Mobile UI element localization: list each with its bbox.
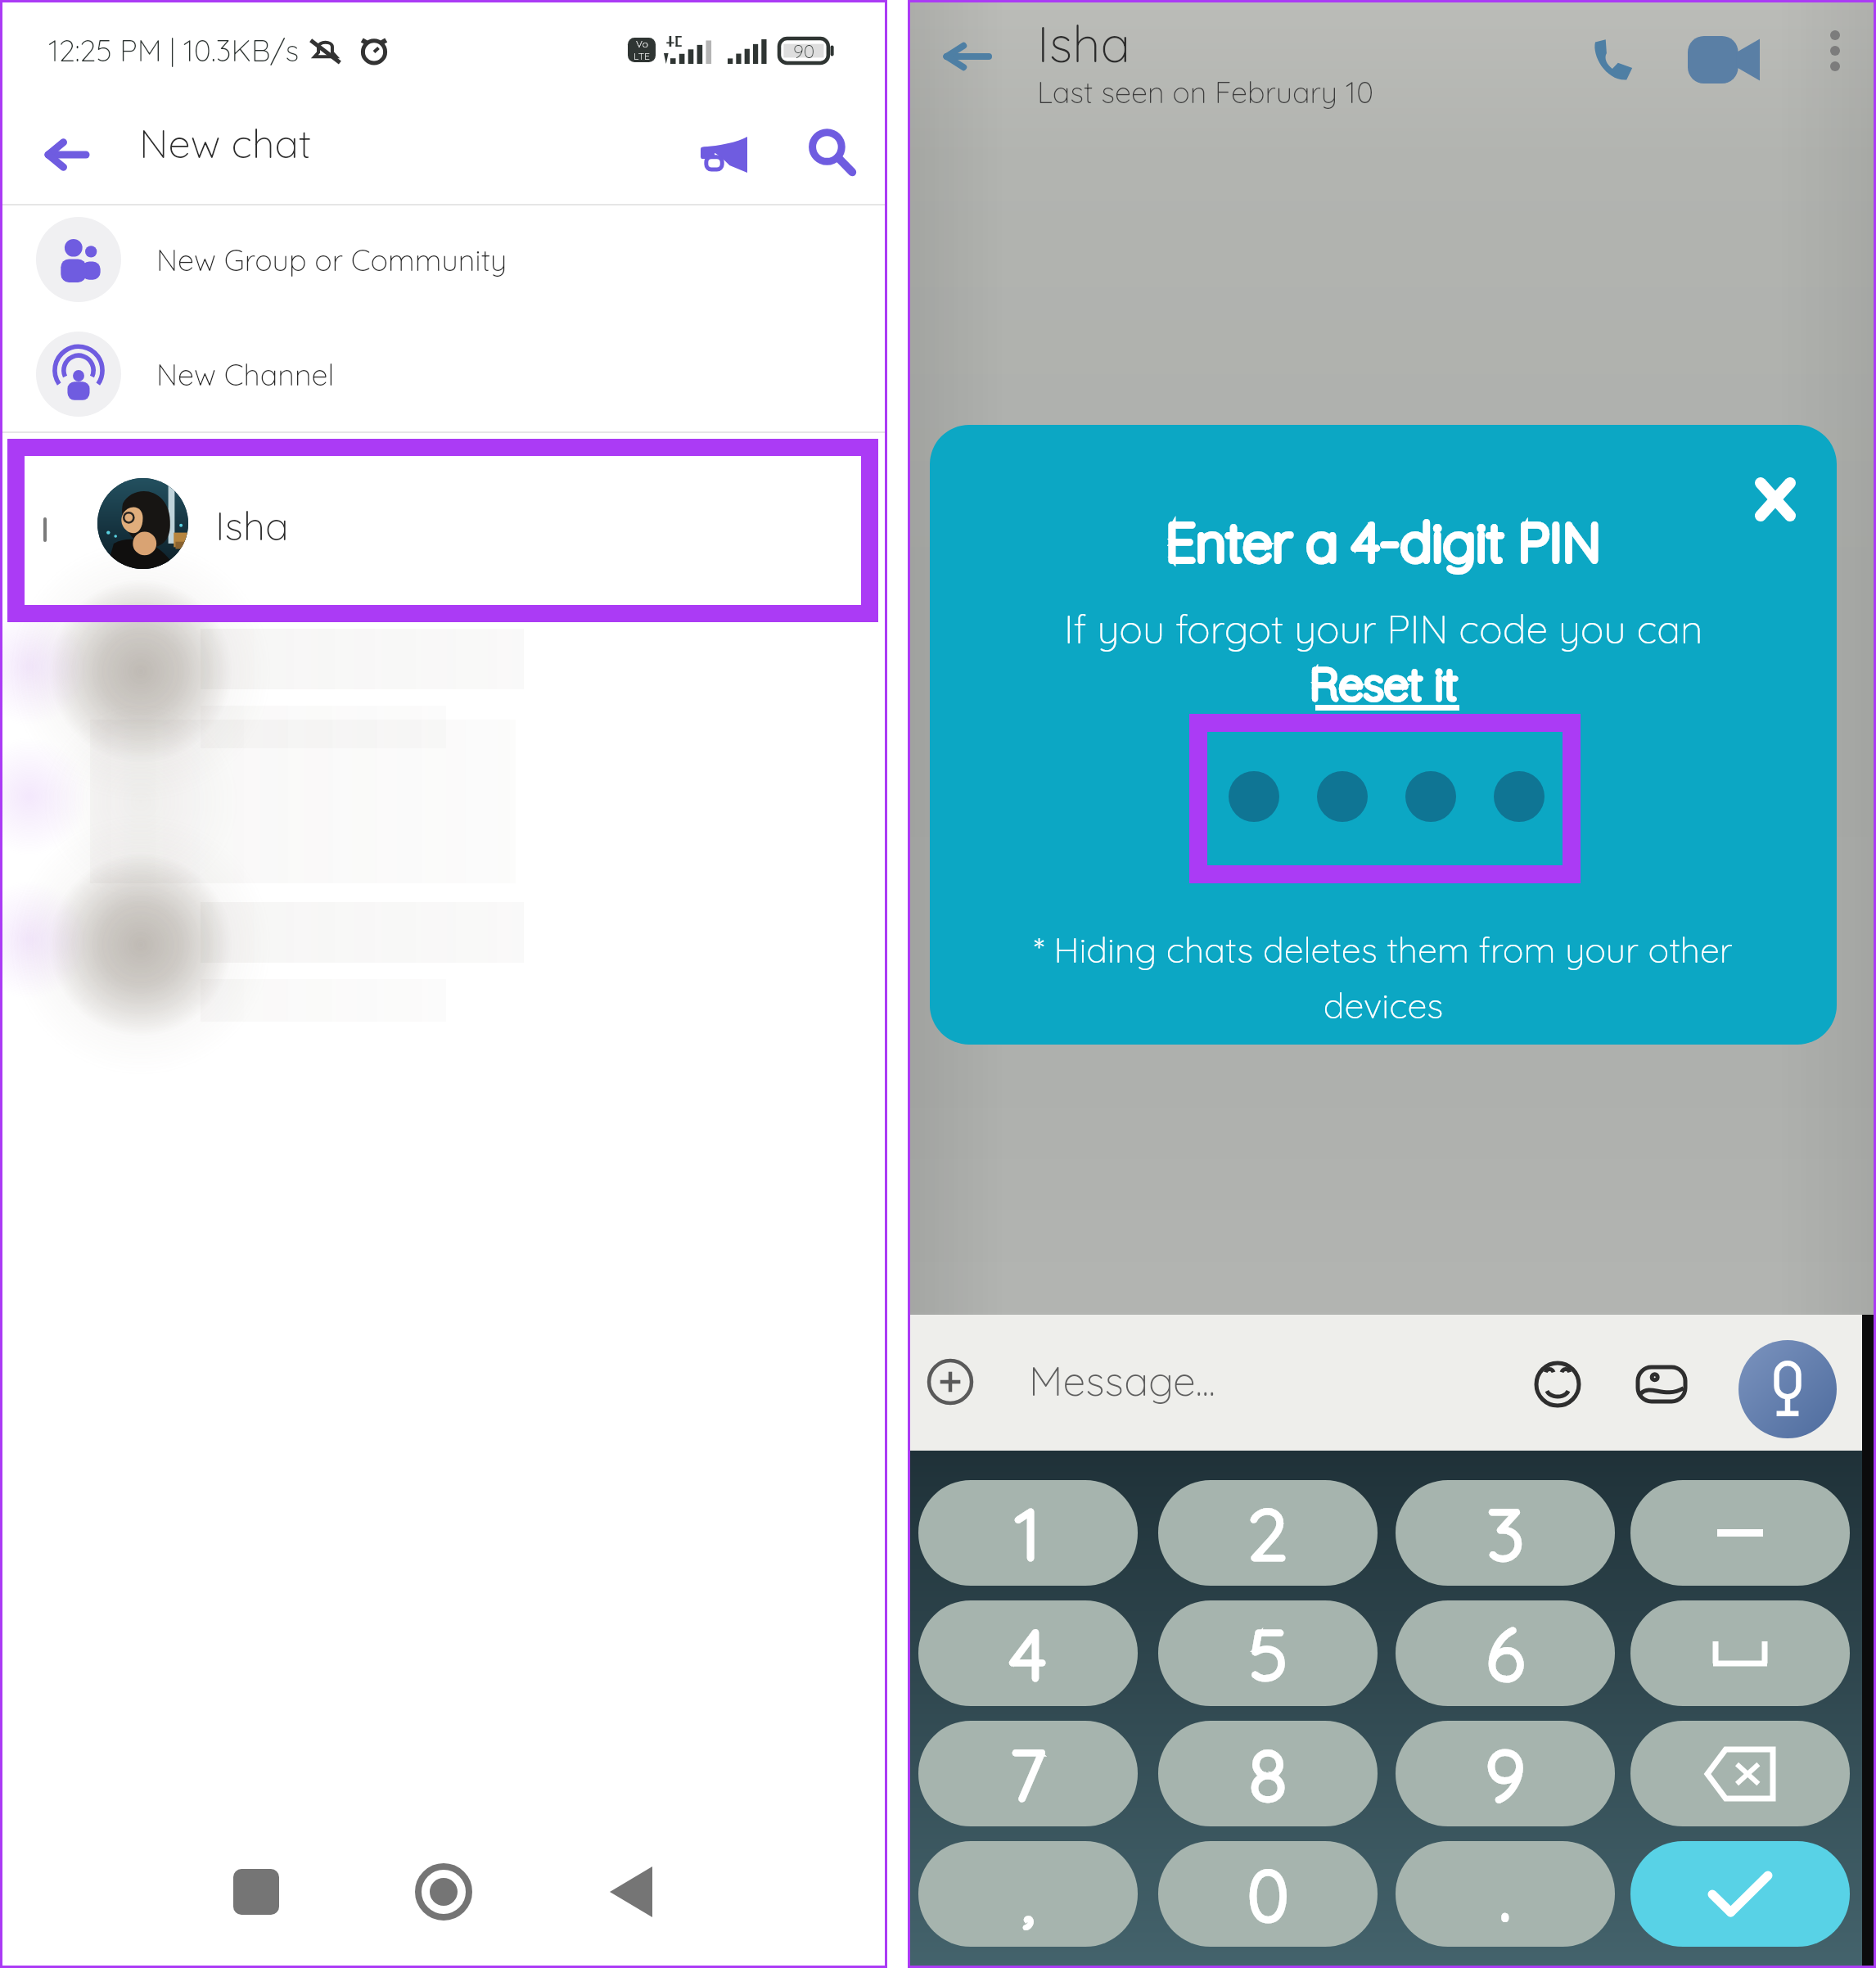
button[interactable]: Call [1581,28,1646,93]
button[interactable]: Video call [1685,21,1762,98]
staticText: 8 [1249,1730,1287,1818]
staticText: 8 [1249,1730,1287,1818]
button[interactable]: 5 [1158,1600,1378,1706]
staticText: Enter a 4-digit PIN [1166,508,1601,575]
staticText: 9 [1486,1730,1525,1818]
staticText: 3 [1487,1489,1524,1578]
staticText: 3 [1487,1489,1524,1578]
button[interactable]: New Group or Community [0,202,887,317]
staticText: 0 [1247,1850,1289,1939]
button[interactable]: Comma [918,1841,1138,1947]
staticText: 5 [1249,1609,1287,1698]
staticText: New chat [139,118,312,168]
staticText: 12:25 PM | 10.3KB/s [48,32,300,69]
button[interactable]: 9 [1396,1721,1615,1826]
staticText: * Hiding chats deletes them from your ot… [1034,928,1733,1027]
button[interactable]: Backspace [1630,1721,1850,1826]
button[interactable]: 6 [1396,1600,1615,1706]
button[interactable]: Back [34,124,97,186]
button[interactable]: Gallery [1634,1356,1689,1412]
staticText: Last seen on February 10 [1037,74,1374,111]
button[interactable]: 7 [918,1721,1138,1826]
staticText: 7 [1010,1730,1046,1818]
staticText: . [1499,1850,1511,1939]
staticText: 90 [793,39,815,63]
staticText: Isha [215,501,289,550]
button[interactable]: Isha [25,456,861,605]
staticText: 6 [1486,1609,1524,1698]
button[interactable]: Back [931,21,1001,92]
button[interactable]: Search [791,111,873,193]
button[interactable]: Minus [1630,1480,1850,1586]
staticText: 1 [1015,1489,1041,1578]
staticText: 2 [1248,1489,1287,1578]
button[interactable]: 8 [1158,1721,1378,1826]
staticText: If you forgot your PIN code you can [1064,604,1703,653]
button[interactable]: 2 [1158,1480,1378,1586]
button[interactable]: Home [399,1847,489,1937]
button[interactable]: 0 [1158,1841,1378,1947]
staticText: , [1022,1850,1035,1939]
staticText: Message... [1029,1355,1215,1406]
staticText: 7 [1010,1730,1046,1818]
button[interactable]: Recents [211,1847,301,1937]
button[interactable]: Close [1741,465,1810,534]
staticText: Enter a 4-digit PIN [1166,508,1601,575]
button[interactable]: Reset it [1310,656,1458,711]
button[interactable]: Space [1630,1600,1850,1706]
button[interactable]: Dot [1396,1841,1615,1947]
staticText: . [1499,1850,1511,1939]
button[interactable]: More options [1812,28,1858,74]
staticText: 2 [1248,1489,1287,1578]
staticText: 9 [1486,1730,1525,1818]
staticText: Reset it [1310,656,1458,711]
staticText: 6 [1486,1609,1524,1698]
button[interactable]: Enter [1630,1841,1850,1947]
staticText: 4 [1010,1609,1046,1698]
button[interactable]: Attach [922,1354,978,1410]
button[interactable]: Voice message [1738,1340,1837,1438]
staticText: LTE [634,50,650,62]
button[interactable]: Broadcast [684,114,764,196]
button[interactable]: Back [586,1847,676,1937]
button[interactable]: New Channel [0,317,887,431]
staticText: 0 [1247,1850,1289,1939]
staticText: New Group or Community [156,241,507,278]
staticText: , [1022,1850,1035,1939]
staticText: New Channel [156,356,335,393]
staticText: 1 [1015,1489,1041,1578]
staticText: 5 [1249,1609,1287,1698]
button[interactable]: 4 [918,1600,1138,1706]
staticText: Reset it [1310,656,1458,711]
button[interactable]: 1 [918,1480,1138,1586]
staticText: 4 [1010,1609,1046,1698]
button[interactable]: 3 [1396,1480,1615,1586]
button[interactable]: Emoji [1530,1356,1585,1412]
staticText: Vo [636,38,648,50]
staticText: Isha [1037,12,1130,74]
